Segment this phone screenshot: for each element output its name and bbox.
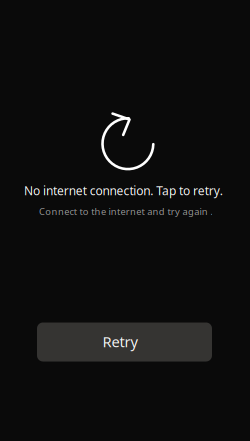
staticText: Retry xyxy=(102,332,137,351)
staticText: Connect to the internet and try again . xyxy=(39,205,213,218)
button[interactable]: Retry xyxy=(37,322,212,361)
staticText: No internet connection. Tap to retry. xyxy=(24,182,223,198)
